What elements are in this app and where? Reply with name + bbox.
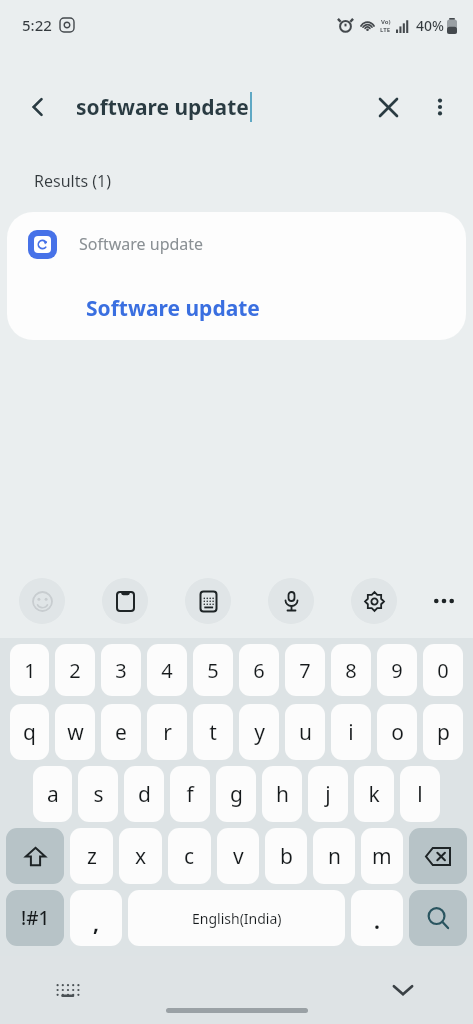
button[interactable]: b [265,828,307,884]
staticText: 9 [391,657,403,684]
button[interactable]: Back [14,83,62,131]
button[interactable]: 4 [147,644,187,696]
staticText: 5:22 [22,15,52,35]
staticText: v [233,842,244,871]
button[interactable]: g [216,766,256,822]
button[interactable]: w [55,704,95,760]
staticText: 7 [299,657,311,684]
button[interactable]: z [70,828,113,884]
button[interactable]: m [361,828,403,884]
button[interactable]: h [262,766,302,822]
staticText: 1 [24,657,36,684]
button[interactable]: Software update [7,212,466,340]
staticText: Software update [79,233,204,255]
button[interactable]: Emoji [19,578,65,624]
button[interactable]: 8 [331,644,371,696]
staticText: r [163,718,172,747]
staticText: x [135,842,147,871]
staticText: 2 [69,657,81,684]
staticText: z [87,842,97,871]
button[interactable]: More options [417,84,463,130]
staticText: s [93,780,104,809]
button[interactable]: k [354,766,394,822]
staticText: 40% [416,16,444,35]
button[interactable]: a [33,766,72,822]
button[interactable]: 7 [285,644,325,696]
staticText: 0 [437,657,449,684]
button[interactable]: 1 [10,644,49,696]
staticText: k [368,780,380,809]
button[interactable]: e [101,704,141,760]
staticText: w [67,718,84,747]
staticText: u [299,718,312,747]
button[interactable]: Search [409,890,467,946]
staticText: 8 [345,657,357,684]
button[interactable]: , [70,890,122,946]
button[interactable]: l [400,766,440,822]
button[interactable]: 2 [55,644,95,696]
button[interactable]: d [124,766,164,822]
button[interactable]: 0 [423,644,463,696]
button[interactable]: p [423,704,463,760]
staticText: n [328,842,341,871]
button[interactable]: q [10,704,49,760]
button[interactable]: Settings [351,578,397,624]
staticText: d [138,780,151,809]
staticText: h [276,780,289,809]
button[interactable]: 6 [239,644,279,696]
button[interactable]: u [285,704,325,760]
button[interactable]: o [377,704,417,760]
button[interactable]: x [119,828,162,884]
button[interactable]: 3 [101,644,141,696]
button[interactable]: y [239,704,279,760]
staticText: t [209,718,217,747]
button[interactable]: 5 [193,644,233,696]
button[interactable]: !#1 [6,890,64,946]
staticText: a [47,780,59,809]
staticText: p [437,718,450,747]
staticText: Vo) [381,18,391,26]
staticText: c [184,842,195,871]
button[interactable]: English(India) [128,890,345,946]
staticText: o [391,718,404,747]
button[interactable]: c [168,828,211,884]
button[interactable]: More [421,578,467,624]
staticText: q [23,718,36,747]
button[interactable]: 9 [377,644,417,696]
staticText: b [280,842,293,871]
staticText: y [254,718,265,747]
button[interactable]: Hide keyboard [381,968,425,1012]
staticText: LTE [380,26,391,34]
staticText: . [374,907,380,936]
button[interactable]: n [313,828,355,884]
button[interactable]: i [331,704,371,760]
button[interactable]: r [147,704,187,760]
staticText: i [348,718,354,747]
button[interactable]: s [78,766,118,822]
button[interactable]: t [193,704,233,760]
staticText: !#1 [21,905,50,931]
staticText: m [372,842,392,871]
staticText: f [186,780,194,809]
staticText: g [230,780,243,809]
button[interactable]: f [170,766,210,822]
staticText: 5 [207,657,219,684]
button[interactable]: Clipboard [102,578,148,624]
staticText: e [115,718,127,747]
button[interactable]: v [217,828,259,884]
staticText: software update [76,93,249,122]
staticText: , [93,909,99,938]
button[interactable]: Backspace [409,828,467,884]
button[interactable]: Text mode [185,578,231,624]
staticText: English(India) [192,909,282,928]
button[interactable]: Keyboard [48,970,88,1010]
staticText: j [325,780,331,809]
staticText: Results (1) [34,170,112,192]
staticText: Software update [86,294,260,323]
button[interactable]: Clear [365,84,411,130]
button[interactable]: Shift [6,828,64,884]
button[interactable]: Voice input [268,578,314,624]
button[interactable]: j [308,766,348,822]
button[interactable]: . [351,890,403,946]
staticText: 6 [253,657,265,684]
